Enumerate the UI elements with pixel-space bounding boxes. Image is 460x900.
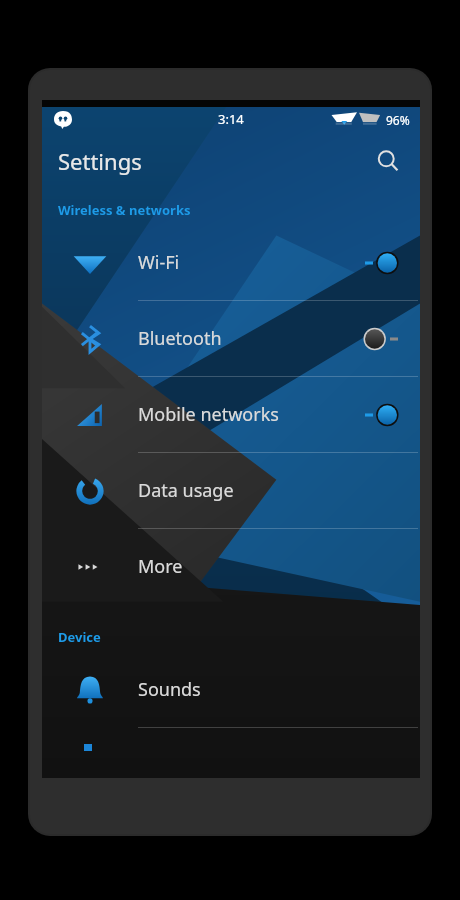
button[interactable]: More	[42, 529, 420, 604]
staticText: 3:14	[218, 110, 244, 128]
staticText: Mobile networks	[138, 402, 364, 427]
staticText: 96%	[386, 112, 410, 128]
button[interactable]: Search	[366, 139, 410, 183]
staticText: Device	[58, 628, 101, 646]
staticText: Wi-Fi	[138, 250, 364, 275]
staticText: More	[138, 554, 420, 579]
button[interactable]: Mobile networks	[42, 377, 420, 452]
button[interactable]: Bluetooth	[42, 301, 420, 376]
staticText: Bluetooth	[138, 326, 364, 351]
staticText: Sounds	[138, 677, 420, 702]
staticText: Settings	[58, 146, 142, 176]
staticText: Data usage	[138, 478, 420, 503]
staticText: Wireless & networks	[58, 201, 191, 219]
button[interactable]: Sounds	[42, 652, 420, 727]
button[interactable]: Wi-Fi	[42, 225, 420, 300]
button[interactable]: Data usage	[42, 453, 420, 528]
